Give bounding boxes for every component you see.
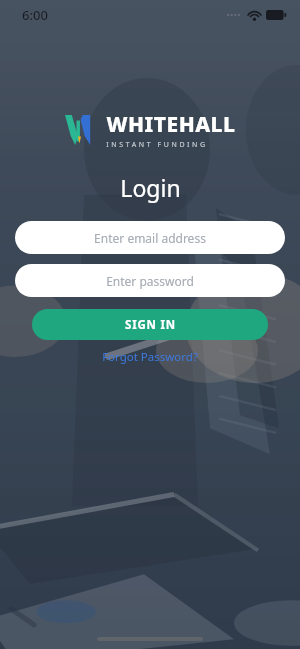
staticText: Login (120, 172, 181, 203)
staticText: Enter email address (94, 230, 206, 246)
button[interactable]: Enter password (15, 264, 285, 297)
button[interactable]: SIGN IN (32, 309, 268, 340)
button[interactable]: Forgot Password? (96, 347, 204, 367)
button[interactable]: Enter email address (15, 221, 285, 254)
staticText: INSTANT FUNDING (106, 140, 208, 150)
staticText: WHITEHALL (106, 110, 236, 139)
staticText: 6:00 (22, 6, 48, 24)
staticText: Enter password (106, 273, 194, 289)
staticText: SIGN IN (125, 317, 176, 333)
staticText: Forgot Password? (102, 349, 198, 365)
